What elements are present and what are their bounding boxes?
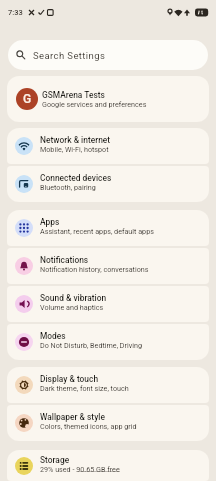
staticText: Dark theme, font size, touch <box>40 384 129 392</box>
staticText: Mobile, Wi-Fi, hotspot <box>40 145 109 153</box>
button[interactable]: Connected devices <box>7 166 209 202</box>
staticText: Volume and haptics <box>40 303 104 311</box>
staticText: Search Settings <box>33 50 106 61</box>
staticText: Notification history, conversations <box>40 265 149 273</box>
staticText: Assistant, recent apps, default apps <box>40 227 154 235</box>
button[interactable]: Display & touch <box>7 367 209 403</box>
staticText: 29% used - 90.65 GB free <box>40 465 120 473</box>
staticText: Bluetooth, pairing <box>40 183 96 191</box>
button[interactable]: Wallpaper & style <box>7 405 209 441</box>
button[interactable]: Sound & vibration <box>7 286 209 322</box>
button[interactable]: Notifications <box>7 248 209 284</box>
staticText: Storage <box>40 455 70 465</box>
button[interactable]: Modes <box>7 324 209 360</box>
staticText: Modes <box>40 331 66 341</box>
staticText: Connected devices <box>40 173 112 183</box>
staticText: Google services and preferences <box>42 100 147 108</box>
staticText: 7:33 <box>8 8 23 17</box>
button[interactable]: Storage <box>7 450 209 481</box>
button[interactable]: Apps <box>7 210 209 246</box>
staticText: Notifications <box>40 255 89 265</box>
button[interactable]: G <box>7 76 209 122</box>
staticText: Colors, themed icons, app grid <box>40 422 137 430</box>
staticText: Do Not Disturb, Bedtime, Driving <box>40 341 143 349</box>
staticText: GSMArena Tests <box>42 90 105 100</box>
staticText: Wallpaper & style <box>40 412 105 422</box>
staticText: G <box>23 92 32 106</box>
button[interactable]: Search Settings <box>8 40 208 70</box>
staticText: Sound & vibration <box>40 293 107 303</box>
staticText: Apps <box>40 217 60 227</box>
button[interactable]: Network & internet <box>7 128 209 164</box>
staticText: Network & internet <box>40 135 111 145</box>
staticText: Display & touch <box>40 374 99 384</box>
